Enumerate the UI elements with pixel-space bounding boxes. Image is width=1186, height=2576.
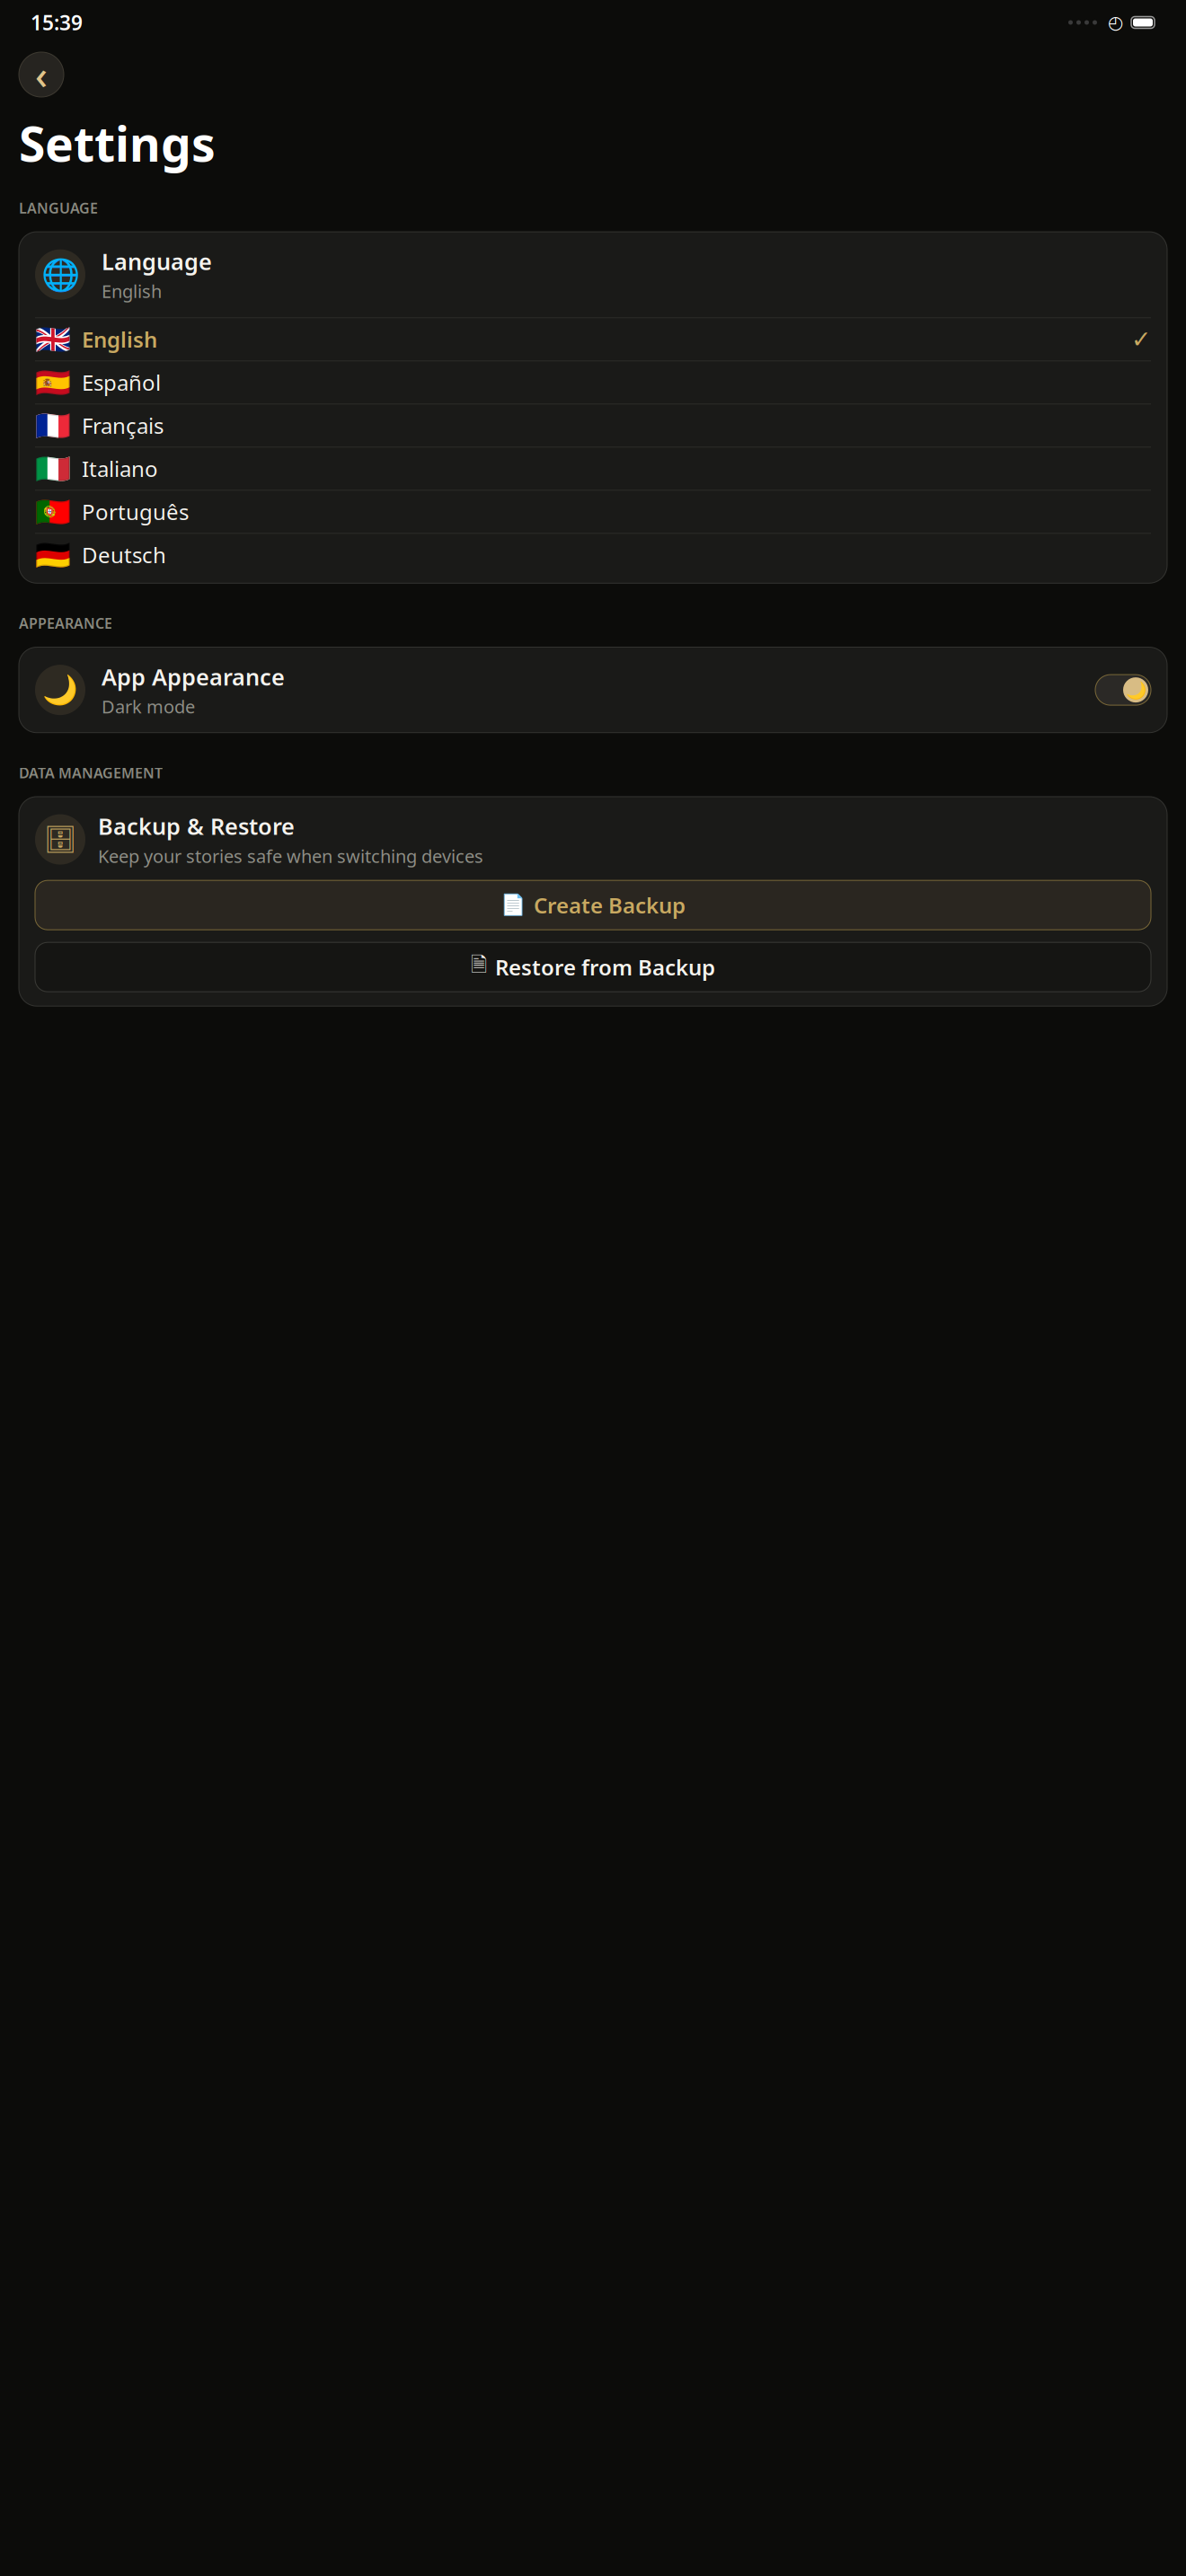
staticText: Create Backup bbox=[534, 891, 686, 919]
staticText: 🇩🇪 bbox=[35, 538, 71, 571]
staticText: Italiano bbox=[82, 454, 158, 483]
staticText: 🇵🇹 bbox=[35, 495, 71, 528]
staticText: Restore from Backup bbox=[495, 953, 715, 981]
staticText: Settings bbox=[19, 111, 216, 175]
staticText: English bbox=[82, 325, 157, 354]
staticText: DATA MANAGEMENT bbox=[19, 763, 163, 782]
staticText: 🗎 bbox=[471, 950, 487, 984]
button[interactable]: 📄 bbox=[35, 880, 1151, 930]
staticText: 🇪🇸 bbox=[35, 366, 71, 399]
staticText: ✓ bbox=[1131, 326, 1151, 353]
button[interactable]: 🇪🇸 bbox=[19, 361, 1167, 404]
staticText: 🇫🇷 bbox=[35, 409, 71, 442]
staticText: Português bbox=[82, 497, 189, 526]
button[interactable]: 🇬🇧 bbox=[19, 318, 1167, 360]
staticText: 🌙 bbox=[42, 673, 78, 706]
staticText: 🌐 bbox=[41, 257, 80, 292]
staticText: Language bbox=[102, 246, 212, 276]
staticText: 🗄 bbox=[44, 824, 77, 854]
staticText: English bbox=[102, 279, 162, 303]
button[interactable]: 🇵🇹 bbox=[19, 491, 1167, 533]
button[interactable]: 🇫🇷 bbox=[19, 404, 1167, 447]
staticText: Dark mode bbox=[102, 694, 195, 718]
staticText: LANGUAGE bbox=[19, 198, 98, 217]
staticText: Français bbox=[82, 411, 164, 440]
staticText: App Appearance bbox=[102, 662, 285, 692]
staticText: Deutsch bbox=[82, 541, 166, 569]
staticText: Keep your stories safe when switching de… bbox=[98, 844, 483, 868]
staticText: Español bbox=[82, 368, 161, 397]
staticText: ‹ bbox=[35, 49, 48, 100]
button[interactable]: 🗎 bbox=[35, 942, 1151, 992]
button[interactable]: 🌙 bbox=[19, 647, 1167, 733]
button[interactable]: 🇩🇪 bbox=[19, 534, 1167, 576]
button[interactable]: 🇮🇹 bbox=[19, 448, 1167, 490]
staticText: APPEARANCE bbox=[19, 614, 112, 633]
staticText: 📄 bbox=[500, 893, 526, 917]
staticText: 15:39 bbox=[31, 9, 83, 36]
button[interactable]: Back bbox=[19, 52, 64, 97]
staticText: 🌙 bbox=[1125, 680, 1146, 700]
staticText: 🇮🇹 bbox=[35, 452, 71, 485]
staticText: 🇬🇧 bbox=[35, 323, 71, 356]
staticText: ◴ bbox=[1108, 12, 1123, 33]
staticText: Backup & Restore bbox=[98, 811, 295, 841]
